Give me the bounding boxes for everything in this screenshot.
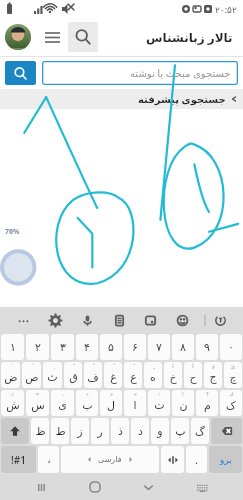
button[interactable]: د <box>131 418 149 444</box>
button[interactable]: ٍ <box>144 362 162 388</box>
button[interactable]: Recents <box>30 476 52 498</box>
button[interactable]: Backspace <box>211 418 242 444</box>
staticText: ظ <box>35 425 46 438</box>
staticText: ۲۰:۵۲ <box>215 3 237 15</box>
button[interactable]: جستجوی پیشرفته <box>0 89 243 109</box>
button[interactable]: !#1 <box>1 446 36 473</box>
button[interactable]: ْ <box>84 362 102 388</box>
staticText: ÷ <box>86 391 89 398</box>
button[interactable]: گ <box>191 418 209 444</box>
button[interactable]: ۱ <box>1 334 24 360</box>
button[interactable]: ۷ <box>148 334 170 360</box>
button[interactable]: More <box>14 311 32 329</box>
staticText: ز <box>77 425 83 438</box>
button[interactable]: ۵ <box>100 334 122 360</box>
button[interactable]: ُ <box>22 362 41 388</box>
button[interactable]: آ <box>184 362 202 388</box>
button[interactable]: ط <box>51 418 69 444</box>
button[interactable]: ر <box>91 418 109 444</box>
staticText: چ <box>229 371 237 384</box>
button[interactable]: ئ <box>224 362 242 388</box>
button[interactable]: » <box>100 390 122 416</box>
button[interactable]: ّ <box>64 362 82 388</box>
button[interactable]: ِ <box>43 362 62 388</box>
button[interactable]: ذ <box>111 418 129 444</box>
staticText: ؟ <box>206 391 209 397</box>
button[interactable]: ۴ <box>76 334 98 360</box>
button[interactable]: Keyboard <box>191 476 213 498</box>
staticText: أ <box>172 363 174 369</box>
staticText: تالار زبانشناس <box>146 29 233 45</box>
button[interactable]: « <box>124 390 146 416</box>
button[interactable]: Profile <box>5 24 31 50</box>
button[interactable]: أ <box>164 362 182 388</box>
button[interactable]: ۹ <box>196 334 218 360</box>
button[interactable]: ز <box>71 418 89 444</box>
button[interactable]: ! <box>172 390 194 416</box>
button[interactable]: Search <box>5 61 36 85</box>
button[interactable]: برو <box>209 446 242 473</box>
button[interactable]: و <box>151 418 169 444</box>
button[interactable]: ۲ <box>26 334 49 360</box>
staticText: ف <box>87 371 99 384</box>
staticText: آ <box>192 363 194 369</box>
button[interactable]: Translate <box>211 311 229 329</box>
staticText: !#1 <box>11 453 26 467</box>
staticText: . <box>195 452 198 467</box>
staticText: ٪ <box>11 391 14 397</box>
staticText: ه <box>150 371 156 384</box>
staticText: ! <box>182 391 184 398</box>
button[interactable]: Clipboard <box>110 311 128 329</box>
button[interactable]: Home <box>84 476 106 498</box>
button[interactable]: ؟ <box>196 390 218 416</box>
button[interactable]: ۸ <box>172 334 194 360</box>
button[interactable]: Voice input <box>78 311 96 329</box>
button[interactable]: َ <box>1 362 20 388</box>
staticText: ۵ <box>108 341 114 354</box>
button[interactable]: ۶ <box>124 334 146 360</box>
staticText: ج <box>209 371 217 384</box>
staticText: ؛ <box>158 391 160 397</box>
staticText: ح <box>189 371 197 384</box>
button[interactable]: ، <box>38 446 59 473</box>
button[interactable]: ٌ <box>104 362 122 388</box>
staticText: س <box>31 399 45 412</box>
staticText: ذ <box>118 425 123 438</box>
staticText: ۱ <box>10 341 16 354</box>
button[interactable]: Space <box>61 446 159 473</box>
button[interactable]: ۳ <box>51 334 74 360</box>
button[interactable]: ؛ <box>148 390 170 416</box>
button[interactable]: ۰ <box>220 334 242 360</box>
staticText: » <box>110 391 113 398</box>
button[interactable]: Stickers <box>141 311 159 329</box>
staticText: ل <box>107 399 115 412</box>
staticText: × <box>36 391 39 398</box>
staticText: ۸ <box>180 341 186 354</box>
button[interactable]: Menu <box>38 23 66 51</box>
button[interactable]: × <box>26 390 49 416</box>
button[interactable]: ؤ <box>204 362 222 388</box>
button[interactable]: Shift <box>1 418 29 444</box>
button[interactable]: Move cursor <box>161 446 184 473</box>
button[interactable]: پ <box>171 418 189 444</box>
staticText: م <box>204 399 211 412</box>
staticText: خ <box>169 371 177 384</box>
button[interactable]: . <box>186 446 207 473</box>
button[interactable]: Search <box>68 22 98 52</box>
button[interactable]: Settings <box>46 311 64 329</box>
button[interactable]: ً <box>124 362 142 388</box>
staticText: ع <box>130 371 137 384</box>
button[interactable]: ÷ <box>76 390 98 416</box>
staticText: ت <box>154 399 165 412</box>
button[interactable]: Emoji <box>173 311 191 329</box>
button[interactable]: ، <box>51 390 74 416</box>
button[interactable]: ظ <box>31 418 49 444</box>
button[interactable]: جستجوی مبحث یا نوشته <box>42 61 238 85</box>
button[interactable]: ٪ <box>1 390 24 416</box>
button[interactable]: ك <box>220 390 242 416</box>
staticText: ئ <box>231 363 235 369</box>
button[interactable]: Back <box>137 476 159 498</box>
staticText: ن <box>179 399 188 412</box>
staticText: فارسی <box>98 455 122 464</box>
staticText: ؤ <box>212 363 215 369</box>
